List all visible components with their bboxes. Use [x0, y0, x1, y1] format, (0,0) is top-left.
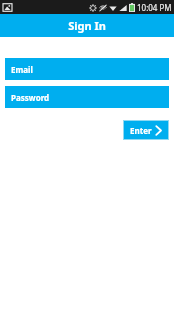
other: Enter: [155, 125, 162, 136]
staticText: Sign In: [68, 18, 106, 33]
staticText: Enter: [130, 125, 152, 136]
button[interactable]: Password: [5, 86, 169, 108]
button[interactable]: Enter: [123, 120, 169, 140]
staticText: Email: [11, 64, 33, 75]
button[interactable]: Email: [5, 58, 169, 80]
staticText: Password: [11, 92, 50, 103]
staticText: 10:04 PM: [137, 2, 172, 13]
